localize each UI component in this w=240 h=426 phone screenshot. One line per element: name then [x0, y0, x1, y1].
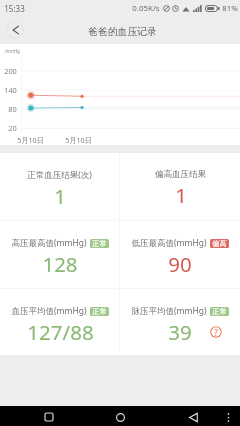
staticText: 正常 — [92, 307, 107, 316]
staticText: 正常血压结果(次) — [27, 169, 92, 181]
staticText: ? — [214, 327, 218, 338]
staticText: 脉压平均值(mmHg) — [131, 305, 207, 317]
staticText: 5月10日 — [65, 135, 92, 145]
staticText: 正常 — [92, 239, 107, 248]
staticText: 81% — [222, 3, 238, 14]
staticText: 1 — [175, 181, 187, 209]
button[interactable]: Back — [6, 21, 24, 39]
staticText: 15:33 — [4, 3, 25, 14]
staticText: 128 — [42, 250, 78, 278]
button[interactable]: Home — [110, 407, 130, 426]
staticText: 高压最高值(mmHg) — [11, 237, 87, 249]
staticText: 200 — [4, 66, 17, 76]
button[interactable]: More options — [218, 407, 238, 426]
staticText: 90 — [168, 250, 192, 278]
button[interactable]: Recents — [39, 407, 59, 426]
staticText: 5月10日 — [17, 135, 44, 145]
button[interactable]: 血压平均值(mmHg) — [0, 289, 119, 355]
staticText: 偏高血压结果 — [155, 169, 206, 180]
staticText: 0.05K/s — [132, 3, 160, 14]
staticText: 20 — [8, 123, 17, 133]
staticText: 低压最高值(mmHg) — [131, 237, 207, 249]
staticText: 偏高 — [212, 239, 227, 248]
staticText: mmHg — [5, 48, 20, 54]
staticText: 1 — [54, 182, 66, 210]
button[interactable]: 高压最高值(mmHg) — [0, 221, 119, 288]
staticText: 140 — [4, 85, 17, 95]
button[interactable]: Back — [183, 407, 203, 426]
staticText: 80 — [8, 104, 17, 114]
button[interactable]: 偏高血压结果 — [120, 153, 240, 220]
button[interactable]: 低压最高值(mmHg) — [120, 221, 240, 288]
staticText: 正常 — [212, 307, 227, 316]
button[interactable]: Help — [210, 326, 222, 338]
staticText: 127/88 — [27, 318, 94, 346]
staticText: 39 — [168, 318, 192, 346]
staticText: 血压平均值(mmHg) — [11, 305, 87, 317]
button[interactable]: 正常血压结果(次) — [0, 153, 119, 220]
button[interactable]: 脉压平均值(mmHg) — [120, 289, 240, 355]
staticText: 爸爸的血压记录 — [88, 26, 157, 38]
